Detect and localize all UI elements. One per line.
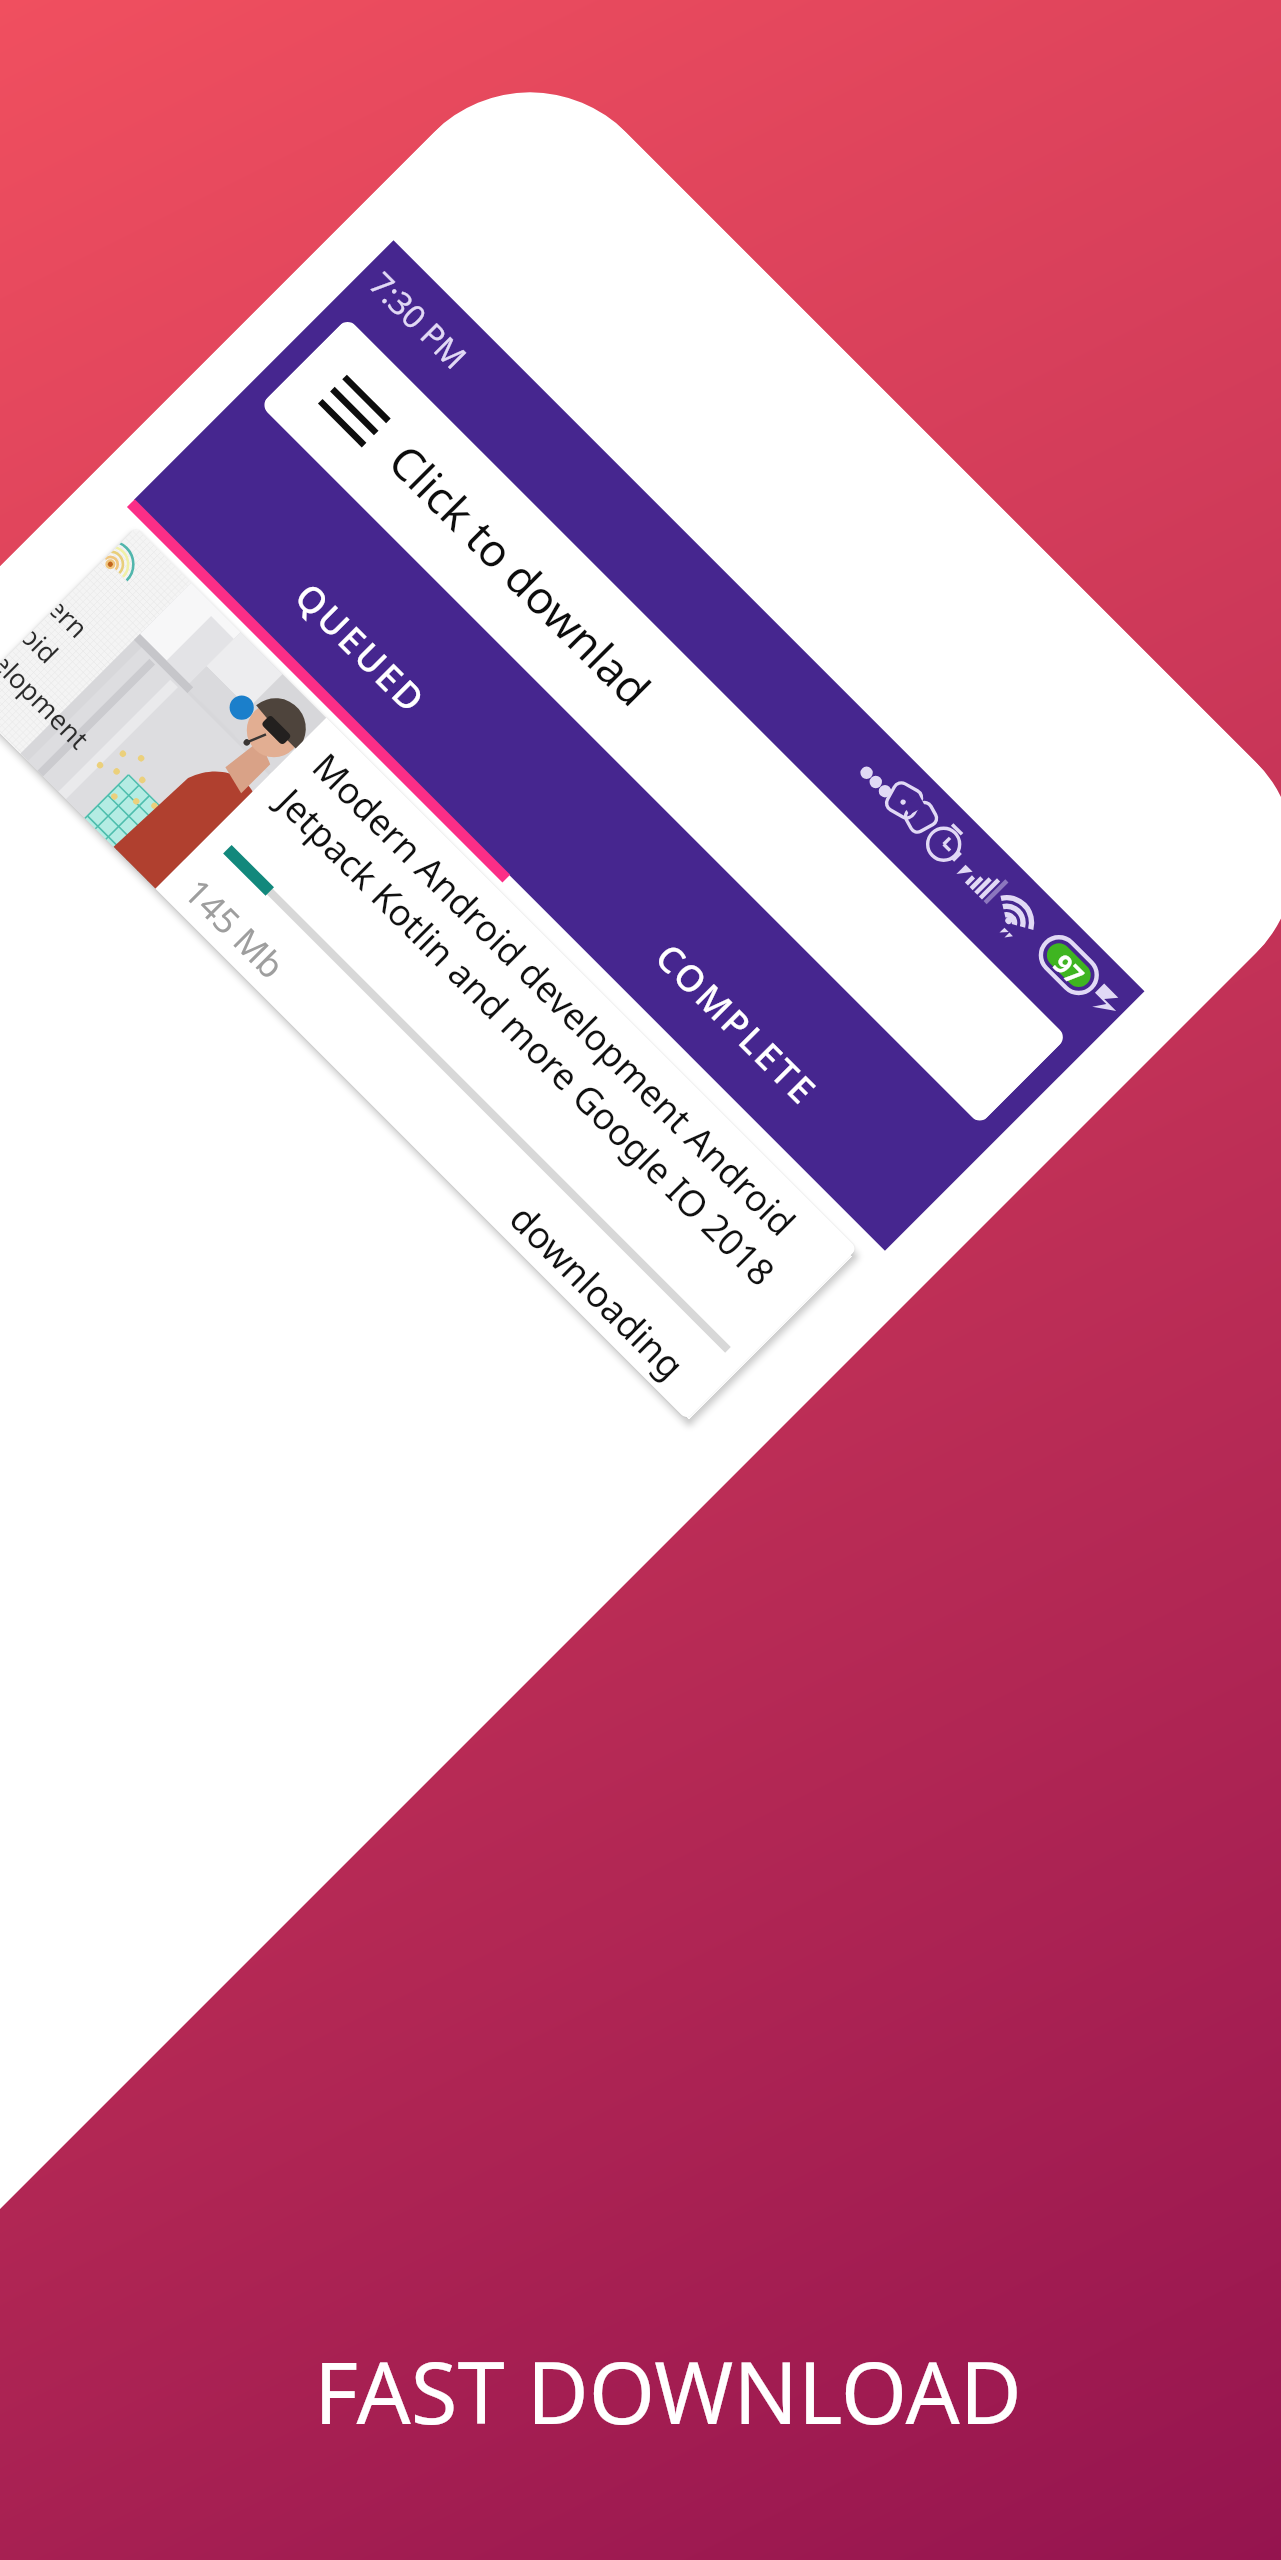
button[interactable]: Menu (260, 317, 1067, 1125)
staticText: 7:30 PM (360, 262, 477, 379)
button[interactable]: ern oid elopment (0, 527, 857, 1420)
staticText: Click to downlad (377, 431, 664, 718)
staticText: Modern Android development Android Jetpa… (267, 742, 822, 1297)
staticText: FAST DOWNLOAD (314, 2333, 1022, 2449)
staticText: QUEUED (285, 572, 437, 725)
staticText: ern oid elopment (0, 593, 153, 757)
button[interactable]: COMPLETE (509, 796, 964, 1251)
staticText: COMPLETE (645, 933, 828, 1116)
staticText: 97 (1046, 946, 1092, 992)
other: Menu (318, 375, 391, 447)
staticText: downloading (500, 1193, 696, 1389)
staticText: 145 Mb (174, 868, 295, 989)
button[interactable]: QUEUED (134, 421, 589, 875)
